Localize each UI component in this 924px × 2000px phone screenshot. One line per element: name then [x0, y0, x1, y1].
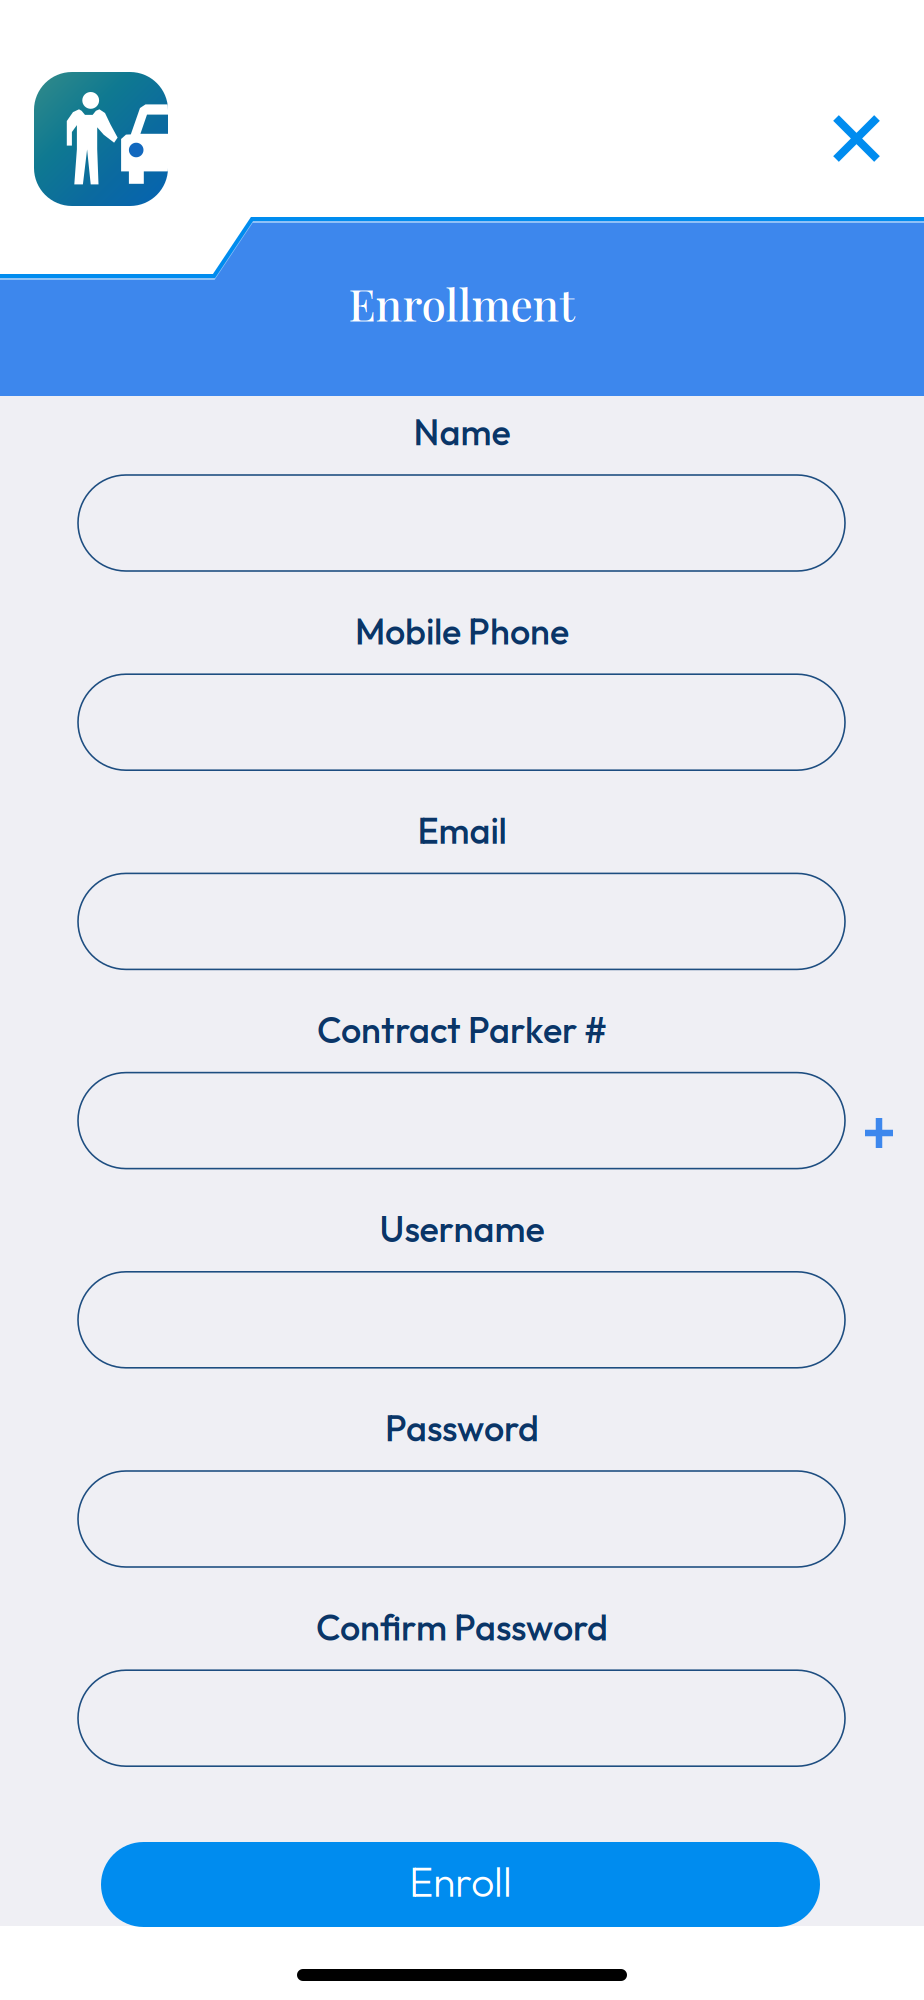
button[interactable]: Add contract parker number: [843, 1096, 915, 1170]
staticText: Enroll: [409, 1855, 512, 1908]
staticText: Contract Parker #: [317, 1007, 607, 1052]
staticText: Enrollment: [348, 274, 575, 333]
button[interactable]: [78, 873, 845, 969]
button[interactable]: [78, 1471, 845, 1567]
button[interactable]: [78, 1272, 845, 1368]
button[interactable]: [78, 674, 845, 770]
staticText: Confirm Password: [316, 1604, 608, 1650]
button[interactable]: [78, 1670, 845, 1766]
staticText: Mobile Phone: [355, 608, 569, 654]
button[interactable]: [78, 1073, 845, 1169]
staticText: Username: [379, 1206, 544, 1251]
staticText: Email: [417, 808, 506, 853]
staticText: Password: [385, 1405, 539, 1451]
button[interactable]: Enroll: [101, 1842, 820, 1927]
button[interactable]: [78, 475, 845, 571]
button[interactable]: Close: [812, 94, 901, 183]
staticText: Name: [413, 409, 510, 455]
